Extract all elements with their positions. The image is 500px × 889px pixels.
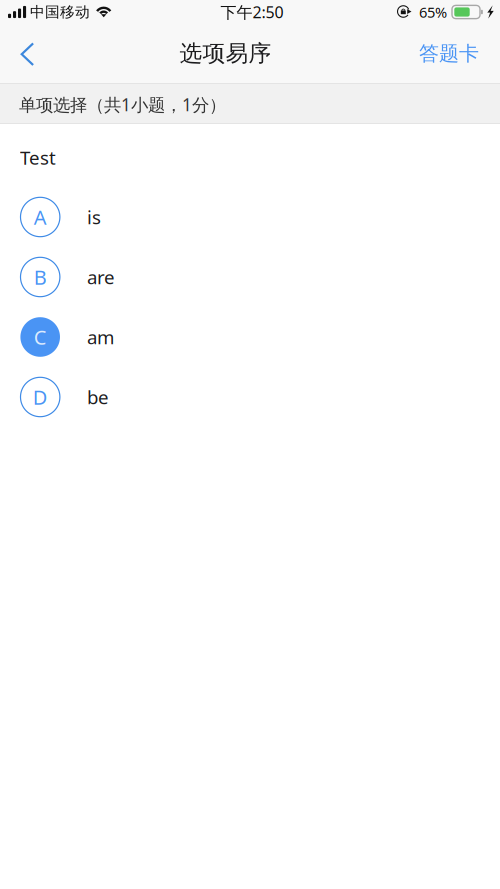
staticText: 65% <box>419 2 447 22</box>
staticText: Test <box>20 145 56 170</box>
staticText: is <box>87 205 101 229</box>
button[interactable]: 答题卡 <box>410 31 488 75</box>
staticText: C <box>34 324 47 350</box>
staticText: 下午2:50 <box>220 1 283 23</box>
button[interactable]: C <box>0 307 500 367</box>
staticText: 选项易序 <box>179 40 271 67</box>
button[interactable]: D <box>0 367 500 427</box>
button[interactable]: Back <box>4 32 50 76</box>
staticText: 中国移动 <box>30 3 90 21</box>
button[interactable]: A <box>0 187 500 247</box>
staticText: are <box>87 265 115 289</box>
staticText: D <box>33 384 48 410</box>
staticText: A <box>34 204 47 230</box>
button[interactable]: B <box>0 247 500 307</box>
staticText: 单项选择（共1小题，1分） <box>19 93 226 116</box>
staticText: B <box>34 264 47 290</box>
staticText: be <box>87 385 109 409</box>
staticText: 答题卡 <box>419 41 479 66</box>
staticText: am <box>87 325 114 349</box>
